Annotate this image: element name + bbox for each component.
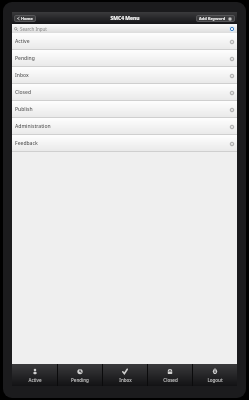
staticText: Pending — [71, 377, 89, 383]
staticText: Closed — [15, 89, 31, 96]
staticText: Publish — [15, 106, 33, 113]
button[interactable]: Pending — [58, 364, 102, 386]
button[interactable]: Publish — [12, 101, 237, 118]
button[interactable]: Active — [12, 33, 237, 50]
button[interactable]: Active — [12, 364, 57, 386]
staticText: Closed — [163, 377, 178, 383]
staticText: Pending — [15, 55, 35, 62]
staticText: SMC4 Menu — [110, 15, 140, 22]
staticText: Logout — [207, 377, 223, 383]
staticText: Feedback — [15, 140, 38, 147]
staticText: Inbox — [119, 377, 132, 383]
button[interactable]: Inbox — [103, 364, 147, 386]
button[interactable]: Feedback — [12, 135, 237, 152]
button[interactable]: Inbox — [12, 67, 237, 84]
button[interactable]: Home — [14, 15, 36, 22]
button[interactable]: Search Input — [12, 24, 237, 33]
staticText: Home — [21, 16, 33, 21]
staticText: Add Keyword — [199, 16, 226, 21]
staticText: Active — [28, 377, 42, 383]
staticText: Search Input — [20, 26, 47, 32]
button[interactable]: Logout — [193, 364, 237, 386]
button[interactable]: Clear search — [229, 26, 235, 32]
button[interactable]: Pending — [12, 50, 237, 67]
staticText: Inbox — [15, 72, 29, 79]
button[interactable]: Closed — [148, 364, 192, 386]
button[interactable]: Closed — [12, 84, 237, 101]
staticText: Administration — [15, 123, 51, 130]
button[interactable]: Administration — [12, 118, 237, 135]
staticText: Active — [15, 38, 30, 45]
button[interactable]: Add Keyword — [196, 15, 235, 22]
